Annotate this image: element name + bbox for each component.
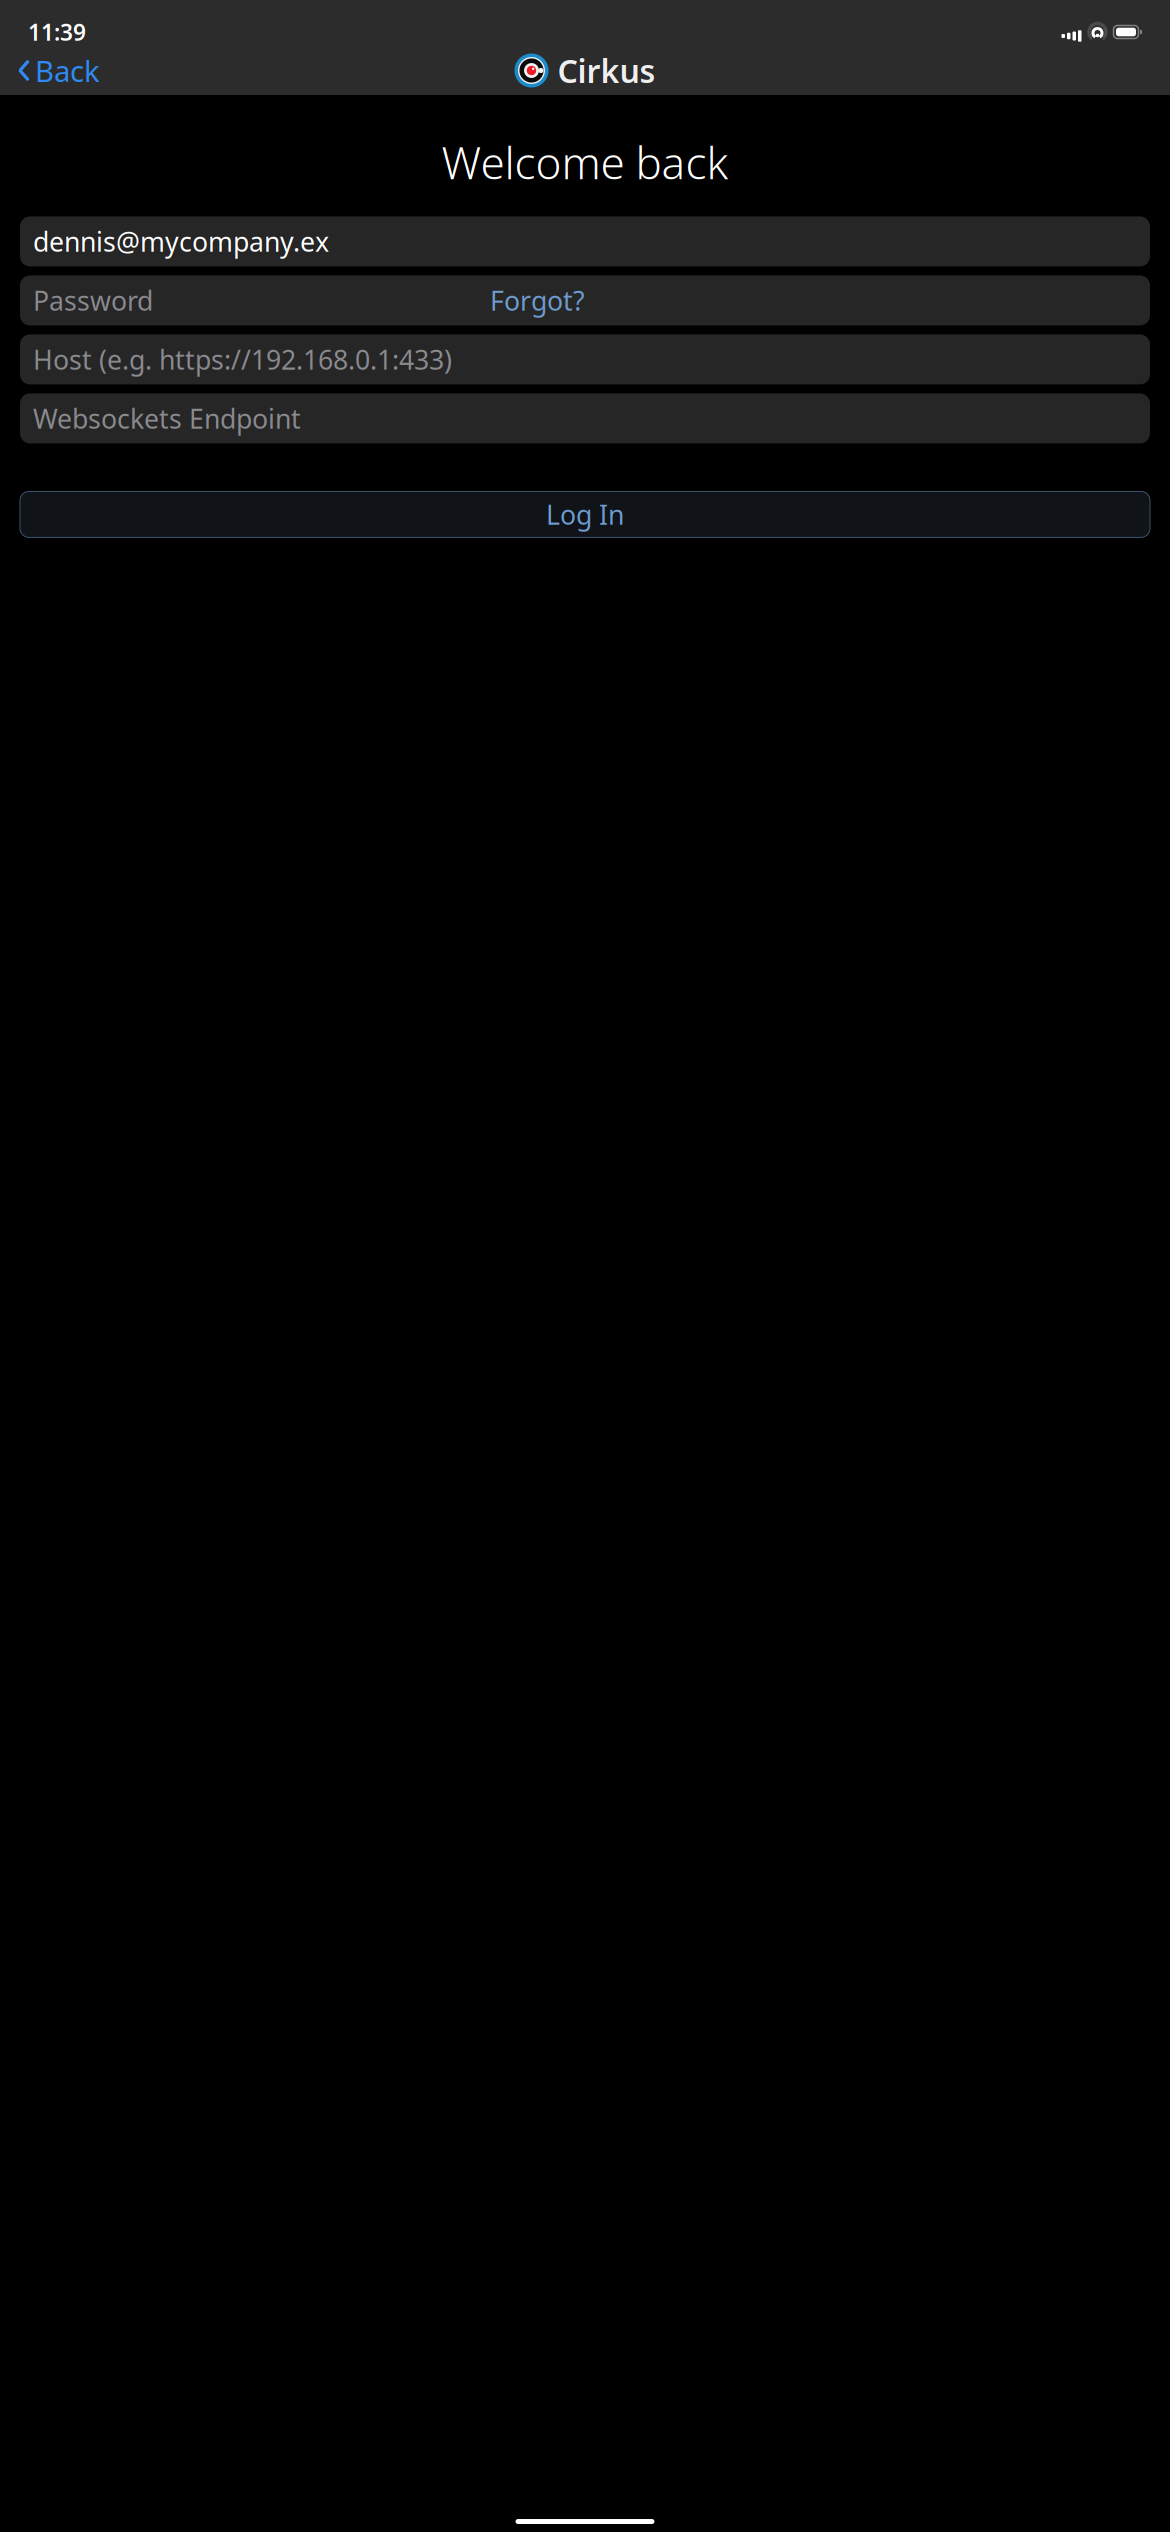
staticText: Cirkus — [557, 49, 655, 92]
button[interactable]: Back — [8, 45, 110, 96]
staticText: dennis@mycompany.ex — [33, 224, 329, 259]
staticText: Password — [33, 283, 153, 318]
staticText: Log In — [546, 497, 624, 532]
button[interactable]: Forgot? — [490, 283, 585, 318]
staticText: Forgot? — [490, 283, 585, 318]
staticText: Welcome back — [441, 133, 728, 191]
button[interactable]: Log In — [20, 491, 1150, 537]
staticText: Websockets Endpoint — [33, 401, 301, 436]
staticText: Back — [35, 51, 100, 90]
staticText: Host (e.g. https://192.168.0.1:433) — [33, 342, 452, 377]
staticText: 11:39 — [28, 17, 86, 47]
